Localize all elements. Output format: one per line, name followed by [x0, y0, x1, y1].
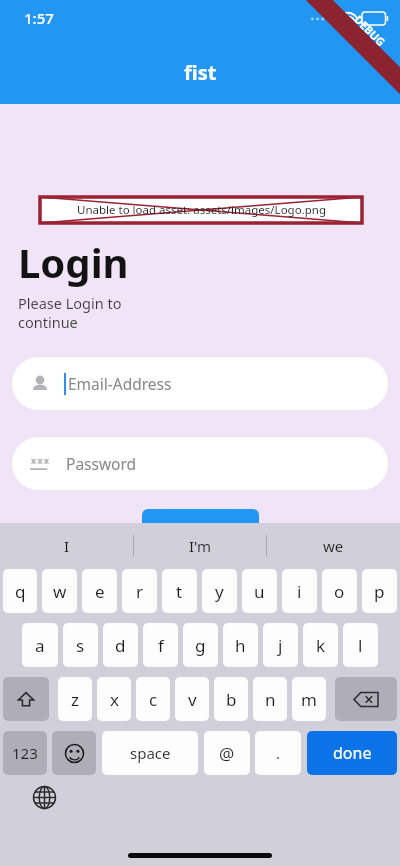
staticText: z: [71, 688, 79, 711]
button[interactable]: r: [122, 569, 157, 613]
staticText: Login: [18, 235, 129, 289]
staticText: k: [316, 634, 326, 657]
staticText: c: [149, 688, 158, 711]
button[interactable]: Login: [142, 509, 259, 555]
button[interactable]: Change keyboard language: [30, 783, 58, 811]
staticText: o: [334, 580, 345, 603]
button[interactable]: 123: [3, 731, 47, 775]
staticText: n: [265, 688, 276, 711]
staticText: h: [235, 634, 246, 657]
staticText: Unable to load asset: assets/images/Logo…: [77, 202, 326, 218]
staticText: w: [53, 580, 67, 603]
button[interactable]: q: [3, 569, 37, 613]
button[interactable]: x: [97, 677, 131, 721]
staticText: f: [158, 634, 164, 657]
staticText: Email-Address: [68, 373, 172, 394]
button[interactable]: e: [82, 569, 117, 613]
staticText: 1:57: [24, 8, 54, 28]
staticText: space: [130, 743, 171, 763]
staticText: Password: [66, 453, 137, 474]
staticText: we: [323, 536, 344, 556]
button[interactable]: p: [362, 569, 397, 613]
button[interactable]: .: [255, 731, 301, 775]
staticText: DEBUG: [351, 12, 389, 49]
button[interactable]: Email-Address: [12, 357, 388, 410]
button[interactable]: o: [322, 569, 357, 613]
button[interactable]: n: [253, 677, 287, 721]
button[interactable]: Emoji: [52, 731, 96, 775]
staticText: e: [95, 580, 105, 603]
staticText: .: [276, 743, 281, 763]
button[interactable]: i: [282, 569, 317, 613]
button[interactable]: y: [202, 569, 237, 613]
staticText: fist: [184, 59, 217, 86]
staticText: q: [15, 580, 26, 603]
button[interactable]: m: [292, 677, 326, 721]
staticText: x: [110, 688, 119, 711]
button[interactable]: s: [63, 623, 98, 667]
staticText: Please Login to continue: [18, 293, 122, 332]
button[interactable]: v: [175, 677, 209, 721]
staticText: j: [278, 634, 283, 657]
staticText: I'm: [189, 536, 212, 556]
staticText: p: [374, 580, 385, 603]
staticText: I: [64, 536, 70, 556]
staticText: g: [195, 634, 206, 657]
button[interactable]: b: [214, 677, 248, 721]
staticText: r: [136, 580, 144, 603]
button[interactable]: g: [183, 623, 218, 667]
staticText: b: [226, 688, 237, 711]
button[interactable]: a: [22, 623, 58, 667]
button[interactable]: Backspace: [335, 677, 397, 721]
button[interactable]: k: [303, 623, 338, 667]
staticText: m: [301, 688, 317, 711]
button[interactable]: z: [58, 677, 92, 721]
staticText: u: [254, 580, 265, 603]
button[interactable]: h: [223, 623, 258, 667]
button[interactable]: w: [42, 569, 77, 613]
staticText: Login: [172, 517, 230, 547]
staticText: @: [219, 742, 235, 765]
staticText: d: [115, 634, 126, 657]
staticText: l: [358, 634, 363, 657]
staticText: t: [176, 580, 183, 603]
button[interactable]: f: [143, 623, 178, 667]
staticText: i: [297, 580, 302, 603]
staticText: done: [333, 742, 372, 764]
staticText: y: [215, 580, 224, 603]
button[interactable]: t: [162, 569, 197, 613]
button[interactable]: d: [103, 623, 138, 667]
button[interactable]: Password: [12, 437, 388, 490]
button[interactable]: @: [204, 731, 250, 775]
staticText: v: [188, 688, 197, 711]
button[interactable]: we: [267, 523, 400, 569]
staticText: 123: [12, 743, 38, 763]
button[interactable]: I'm: [134, 523, 267, 569]
button[interactable]: j: [263, 623, 298, 667]
button[interactable]: c: [136, 677, 170, 721]
button[interactable]: done: [307, 731, 397, 775]
button[interactable]: l: [343, 623, 378, 667]
button[interactable]: Shift: [3, 677, 49, 721]
staticText: a: [35, 634, 45, 657]
button[interactable]: u: [242, 569, 277, 613]
button[interactable]: I: [0, 523, 134, 569]
button[interactable]: space: [102, 731, 198, 775]
staticText: s: [76, 634, 85, 657]
